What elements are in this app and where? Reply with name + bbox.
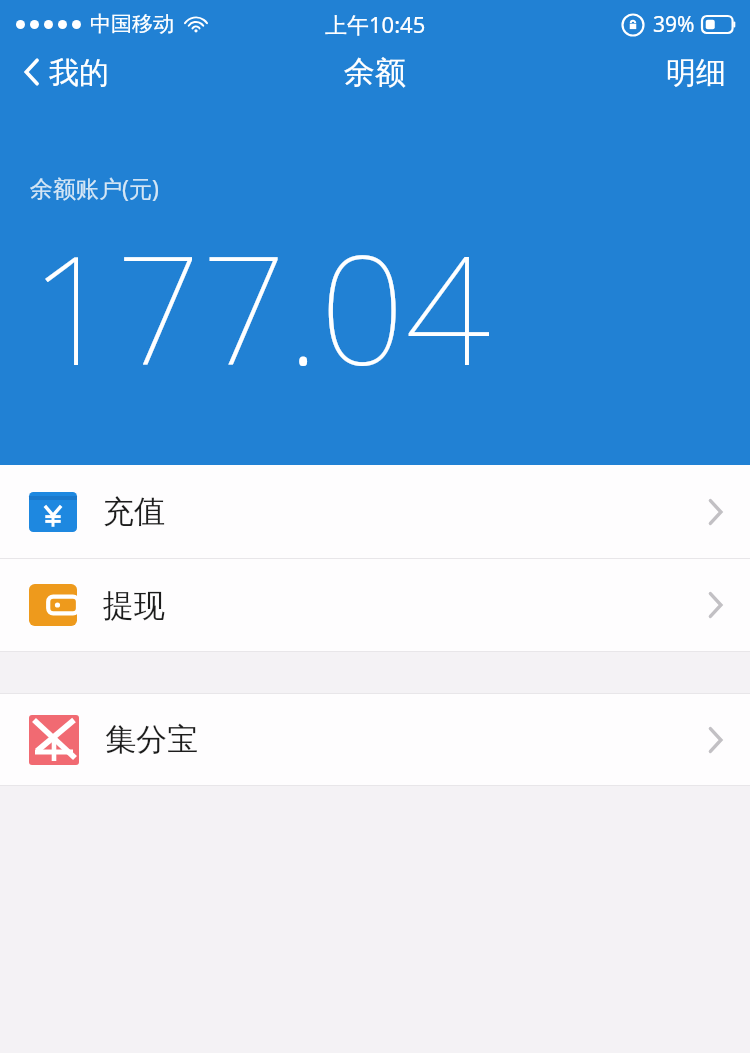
button[interactable]: 充值 bbox=[0, 465, 750, 558]
staticText: 集分宝 bbox=[105, 720, 198, 759]
button[interactable]: 我的 bbox=[0, 48, 123, 96]
button[interactable]: 明细 bbox=[642, 48, 750, 96]
staticText: 中国移动 bbox=[90, 11, 174, 37]
button[interactable]: 集分宝 bbox=[0, 694, 750, 785]
staticText: 上午10:45 bbox=[325, 9, 426, 39]
button[interactable]: 提现 bbox=[0, 559, 750, 651]
staticText: 余额 bbox=[344, 53, 406, 92]
staticText: 39% bbox=[653, 10, 695, 39]
staticText: 余额账户(元) bbox=[30, 172, 159, 203]
staticText: 177.04 bbox=[30, 205, 491, 409]
staticText: 我的 bbox=[49, 54, 109, 90]
staticText: 提现 bbox=[103, 586, 165, 625]
staticText: 充值 bbox=[103, 492, 165, 531]
staticText: 明细 bbox=[666, 54, 726, 90]
